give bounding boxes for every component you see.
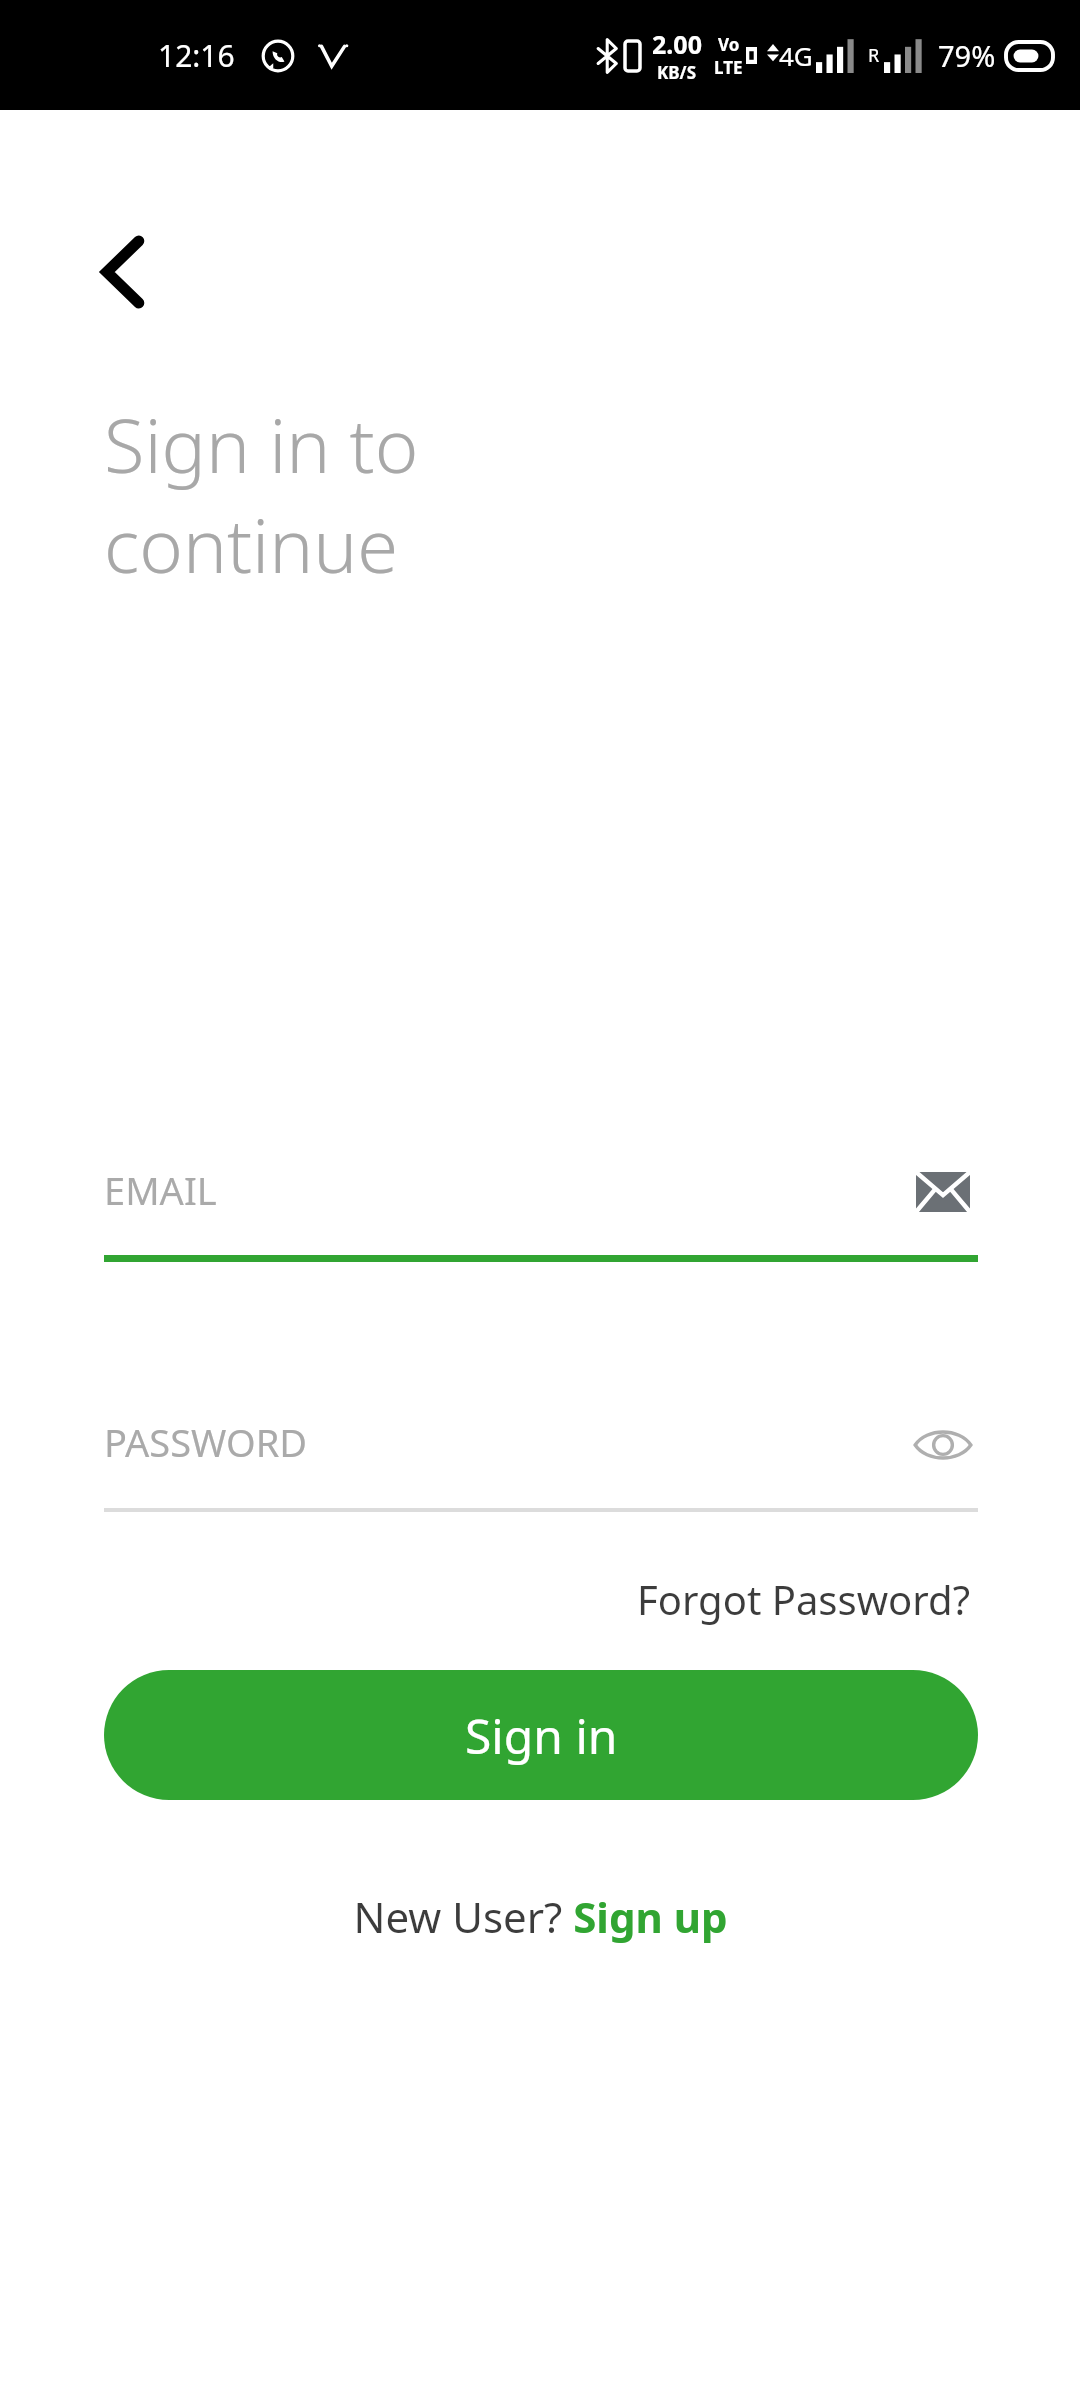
staticText: PASSWORD (104, 1416, 308, 1468)
staticText: Sign in (465, 1703, 618, 1768)
staticText: Sign in to continue (104, 394, 419, 595)
staticText: EMAIL (104, 1164, 217, 1216)
staticText: Forgot Password? (637, 1572, 970, 1626)
staticText: Vo (718, 33, 740, 56)
staticText: 4G (779, 38, 813, 73)
button[interactable]: Forgot Password? (631, 1562, 976, 1636)
button[interactable]: New User? Sign up (343, 1878, 738, 1955)
staticText: 79% (938, 36, 996, 75)
button[interactable]: Show password (908, 1410, 978, 1480)
button[interactable]: Email (908, 1157, 978, 1227)
button[interactable]: Sign in (104, 1670, 978, 1800)
staticText: 12:16 (158, 35, 235, 76)
staticText: KB/S (657, 61, 697, 84)
staticText: 2.00 (652, 27, 702, 61)
staticText: New User? Sign up (353, 1888, 728, 1945)
button[interactable]: Back (72, 222, 172, 322)
staticText: LTE (714, 56, 743, 79)
button[interactable]: PASSWORD (104, 1402, 978, 1512)
staticText: R (868, 43, 880, 68)
button[interactable]: EMAIL (104, 1150, 978, 1262)
